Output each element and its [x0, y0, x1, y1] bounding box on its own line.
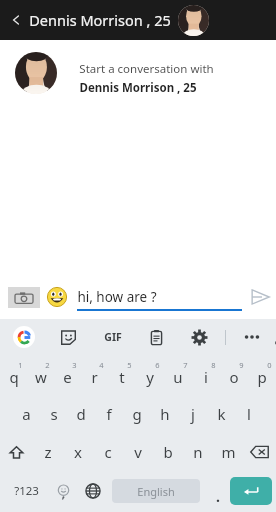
button[interactable]: b	[153, 433, 183, 471]
staticText: 7	[183, 360, 188, 370]
staticText: d	[76, 404, 86, 424]
button[interactable]: Settings	[186, 324, 212, 350]
button[interactable]: g	[123, 395, 151, 433]
button[interactable]: t	[108, 355, 136, 395]
button[interactable]: f	[95, 395, 123, 433]
staticText: r	[91, 367, 98, 387]
staticText: Dennis Morrison , 25	[29, 10, 171, 30]
button[interactable]: v	[123, 433, 153, 471]
button[interactable]: d	[67, 395, 95, 433]
staticText: 1	[18, 360, 23, 370]
button[interactable]: Emoji	[47, 287, 67, 307]
button[interactable]: u	[164, 355, 192, 395]
staticText: b	[163, 442, 173, 462]
staticText: l	[247, 404, 251, 424]
button[interactable]: Enter	[230, 477, 272, 505]
button[interactable]: Emoji keyboard	[50, 474, 76, 508]
button[interactable]: Shift	[0, 433, 33, 471]
staticText: h	[160, 404, 170, 424]
button[interactable]: p	[248, 355, 276, 395]
staticText: w	[35, 367, 47, 387]
staticText: x	[74, 442, 82, 462]
staticText: q	[9, 367, 19, 387]
staticText: GIF	[104, 330, 122, 344]
staticText: z	[44, 442, 52, 462]
button[interactable]: x	[63, 433, 93, 471]
staticText: 2	[45, 360, 50, 370]
button[interactable]: m	[213, 433, 243, 471]
button[interactable]: Back	[5, 3, 27, 37]
button[interactable]: q	[0, 355, 27, 395]
button[interactable]: w	[27, 355, 54, 395]
staticText: u	[173, 367, 183, 387]
button[interactable]: Google search	[13, 326, 35, 348]
staticText: Start a conversation with	[79, 61, 214, 77]
staticText: y	[146, 367, 154, 387]
button[interactable]: More options	[239, 324, 265, 350]
staticText: 6	[155, 360, 160, 370]
button[interactable]: ?123	[8, 474, 44, 508]
button[interactable]: o	[220, 355, 248, 395]
button[interactable]: Change language	[80, 474, 106, 508]
button[interactable]: h	[151, 395, 179, 433]
button[interactable]: hi, how are ?	[77, 283, 242, 311]
staticText: 4	[99, 360, 104, 370]
staticText: m	[221, 442, 236, 462]
staticText: ?123	[14, 483, 39, 499]
staticText: v	[134, 442, 142, 462]
staticText: k	[217, 404, 226, 424]
staticText: 0	[267, 360, 272, 370]
staticText: hi, how are ?	[77, 288, 157, 306]
staticText: 9	[239, 360, 244, 370]
staticText: Dennis Morrison , 25	[79, 80, 197, 96]
staticText: t	[119, 367, 125, 387]
button[interactable]: Stickers	[55, 324, 81, 350]
staticText: s	[50, 404, 58, 424]
button[interactable]: c	[93, 433, 123, 471]
staticText: English	[137, 484, 175, 499]
staticText: g	[132, 404, 142, 424]
staticText: n	[193, 442, 203, 462]
staticText: a	[22, 404, 31, 424]
button[interactable]: Clipboard	[143, 324, 169, 350]
button[interactable]: r	[81, 355, 108, 395]
button[interactable]: English	[112, 479, 200, 503]
button[interactable]: z	[33, 433, 63, 471]
button[interactable]: k	[207, 395, 235, 433]
staticText: p	[257, 367, 267, 387]
button[interactable]: j	[179, 395, 207, 433]
button[interactable]: l	[235, 395, 263, 433]
staticText: 5	[127, 360, 132, 370]
staticText: o	[229, 367, 239, 387]
staticText: f	[106, 404, 112, 424]
staticText: i	[204, 367, 208, 387]
button[interactable]: Profile photo	[178, 5, 209, 36]
button[interactable]: Send	[246, 277, 274, 317]
button[interactable]: s	[40, 395, 67, 433]
button[interactable]: e	[54, 355, 81, 395]
staticText: j	[191, 404, 195, 424]
staticText: c	[104, 442, 112, 462]
staticText: e	[63, 367, 72, 387]
button[interactable]: i	[192, 355, 220, 395]
staticText: 3	[72, 360, 77, 370]
staticText: .	[216, 487, 220, 506]
button[interactable]: GIF	[99, 324, 127, 350]
button[interactable]: .	[208, 474, 228, 508]
button[interactable]: n	[183, 433, 213, 471]
button[interactable]: a	[13, 395, 40, 433]
button[interactable]: Camera	[8, 287, 40, 308]
button[interactable]: y	[136, 355, 164, 395]
button[interactable]: Backspace	[243, 433, 276, 471]
staticText: 8	[211, 360, 216, 370]
